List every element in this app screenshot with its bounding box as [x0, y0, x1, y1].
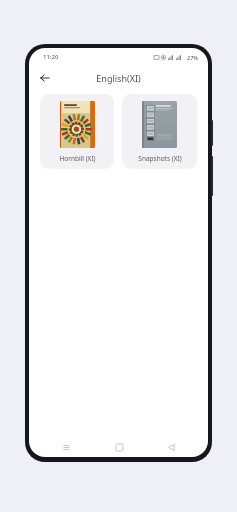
- button[interactable]: Home: [104, 438, 134, 456]
- button[interactable]: Back: [35, 68, 55, 88]
- staticText: English(XI): [96, 72, 141, 84]
- staticText: 11:20: [43, 53, 59, 61]
- button[interactable]: Hornbill (XI): [40, 94, 114, 169]
- staticText: Snapshots (XI): [138, 154, 182, 163]
- button[interactable]: Back: [156, 438, 186, 456]
- staticText: Hornbill (XI): [59, 154, 96, 163]
- button[interactable]: Snapshots (XI): [122, 94, 197, 169]
- staticText: 27%: [187, 54, 198, 61]
- button[interactable]: Recent apps: [51, 438, 81, 456]
